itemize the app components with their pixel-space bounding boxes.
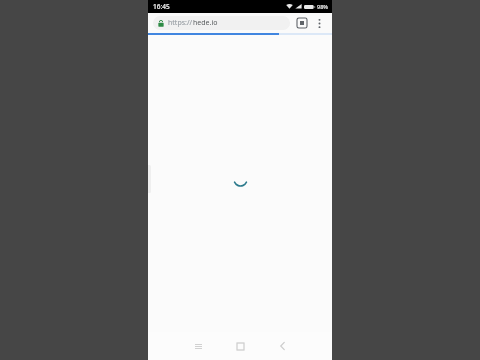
button[interactable]: Recent apps: [183, 332, 213, 360]
staticText: 16:45: [153, 2, 170, 11]
button[interactable]: https://: [153, 16, 290, 30]
button[interactable]: Home: [225, 332, 255, 360]
button[interactable]: Tabs: [293, 14, 311, 32]
staticText: 98%: [317, 3, 328, 10]
button[interactable]: More options: [311, 15, 327, 31]
button[interactable]: Back: [267, 332, 297, 360]
staticText: hede.io: [193, 18, 218, 28]
staticText: https://: [168, 18, 193, 28]
